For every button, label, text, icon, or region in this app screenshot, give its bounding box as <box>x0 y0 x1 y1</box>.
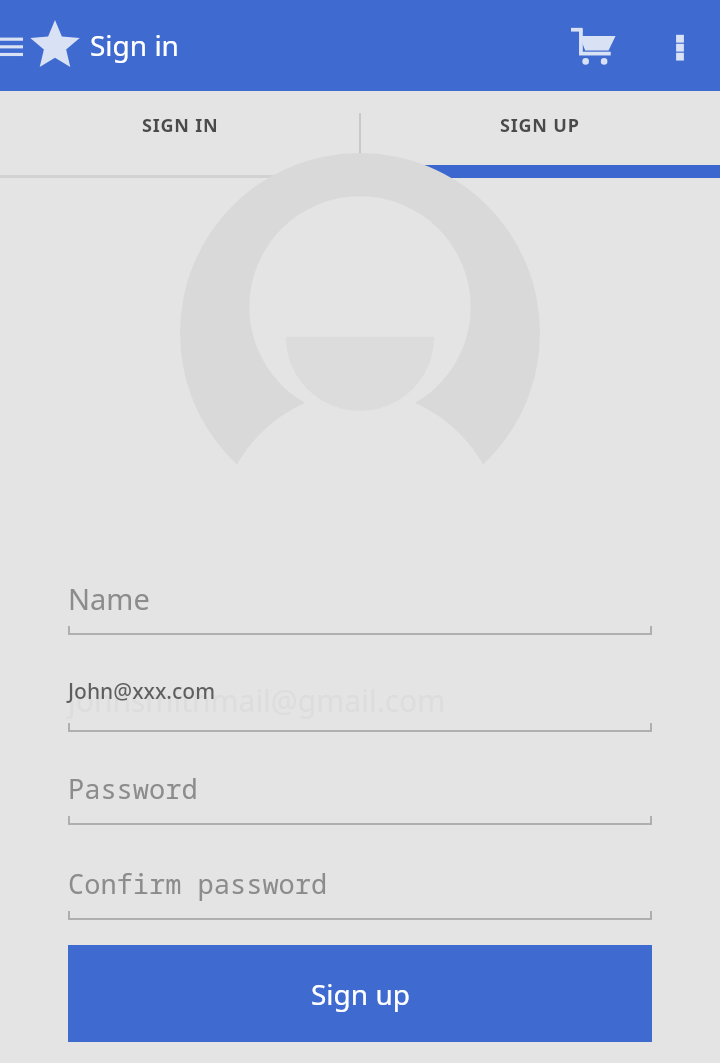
staticText: Sign in <box>90 26 179 64</box>
button[interactable]: Favorites <box>27 18 83 74</box>
button[interactable]: Password <box>68 760 652 825</box>
button[interactable]: Confirm password <box>68 855 652 920</box>
staticText: Sign up <box>311 975 410 1013</box>
button[interactable]: Shopping cart <box>562 14 626 78</box>
button[interactable]: Name <box>68 570 652 635</box>
staticText: SIGN UP <box>500 113 580 138</box>
staticText: Confirm password <box>68 865 328 902</box>
staticText: Password <box>68 770 198 807</box>
staticText: Name <box>68 579 150 618</box>
button[interactable]: Open navigation menu <box>0 24 30 68</box>
staticText: johnsmithmail@gmail.com <box>68 680 446 721</box>
button[interactable]: More options <box>652 18 708 74</box>
button[interactable]: SIGN IN <box>0 91 360 178</box>
staticText: John@xxx.com <box>68 677 216 706</box>
button[interactable]: SIGN UP <box>360 91 720 178</box>
staticText: SIGN IN <box>142 113 219 138</box>
button[interactable]: Sign up <box>68 945 652 1042</box>
